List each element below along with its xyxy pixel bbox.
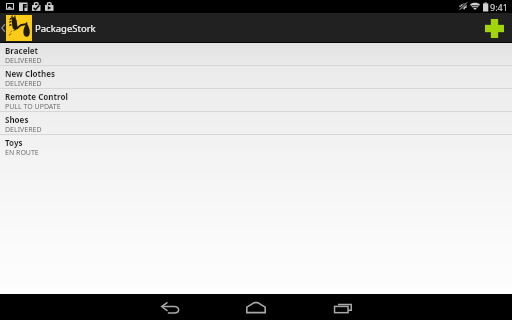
button[interactable]: Recent apps — [304, 294, 382, 320]
button[interactable]: Toys — [0, 135, 512, 158]
staticText: Shoes — [5, 114, 29, 125]
staticText: DELIVERED — [5, 56, 42, 66]
button[interactable]: Remote Control — [0, 89, 512, 112]
staticText: DELIVERED — [5, 79, 42, 89]
button[interactable]: Shoes — [0, 112, 512, 135]
button[interactable]: PackageStork — [0, 13, 96, 43]
staticText: EN ROUTE — [5, 148, 39, 158]
staticText: DELIVERED — [5, 125, 42, 135]
staticText: Remote Control — [5, 91, 68, 102]
staticText: 9:41 — [490, 1, 508, 13]
button[interactable]: Back — [131, 294, 209, 320]
staticText: PULL TO UPDATE — [5, 102, 61, 112]
staticText: PackageStork — [35, 22, 96, 35]
staticText: Toys — [5, 137, 23, 148]
staticText: Bracelet — [5, 45, 39, 56]
staticText: New Clothes — [5, 68, 56, 79]
button[interactable]: New Clothes — [0, 66, 512, 89]
button[interactable]: Home — [217, 294, 295, 320]
button[interactable]: Bracelet — [0, 43, 512, 66]
button[interactable]: Add package — [477, 13, 512, 43]
